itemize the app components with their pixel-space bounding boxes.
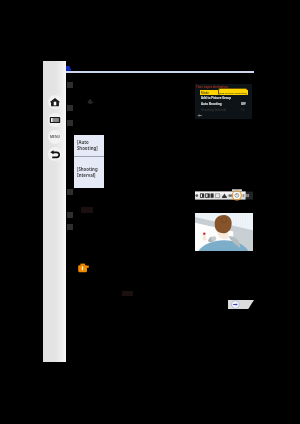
button[interactable]: Add to Picture Group xyxy=(199,95,247,99)
button[interactable]: [Auto Shooting] xyxy=(74,135,104,188)
button[interactable]: Contents xyxy=(48,113,62,127)
staticText: Off xyxy=(241,102,246,106)
button[interactable]: Shooting Interval xyxy=(199,107,247,111)
staticText: Time Lapse Animation xyxy=(196,85,229,89)
button[interactable]: Next page xyxy=(228,300,254,309)
staticText: Shooting Interval xyxy=(201,108,227,112)
staticText: [Auto Shooting] xyxy=(77,139,98,151)
button[interactable]: Auto Shooting xyxy=(199,101,247,105)
button[interactable]: Menu xyxy=(48,130,62,144)
staticText: Add to Picture Group xyxy=(201,96,232,100)
staticText: [Shooting Interval] xyxy=(77,166,98,178)
button[interactable]: Mode xyxy=(200,90,248,95)
staticText: 1s xyxy=(241,108,245,112)
staticText: Stop Picture Animation xyxy=(219,91,247,94)
button[interactable]: Stop Picture Animation xyxy=(218,88,247,95)
staticText: Mode xyxy=(201,91,209,95)
staticText: MENU xyxy=(50,135,60,139)
button[interactable]: Home xyxy=(48,95,62,109)
button[interactable]: Back xyxy=(48,147,62,161)
staticText: Auto Shooting xyxy=(201,102,222,106)
